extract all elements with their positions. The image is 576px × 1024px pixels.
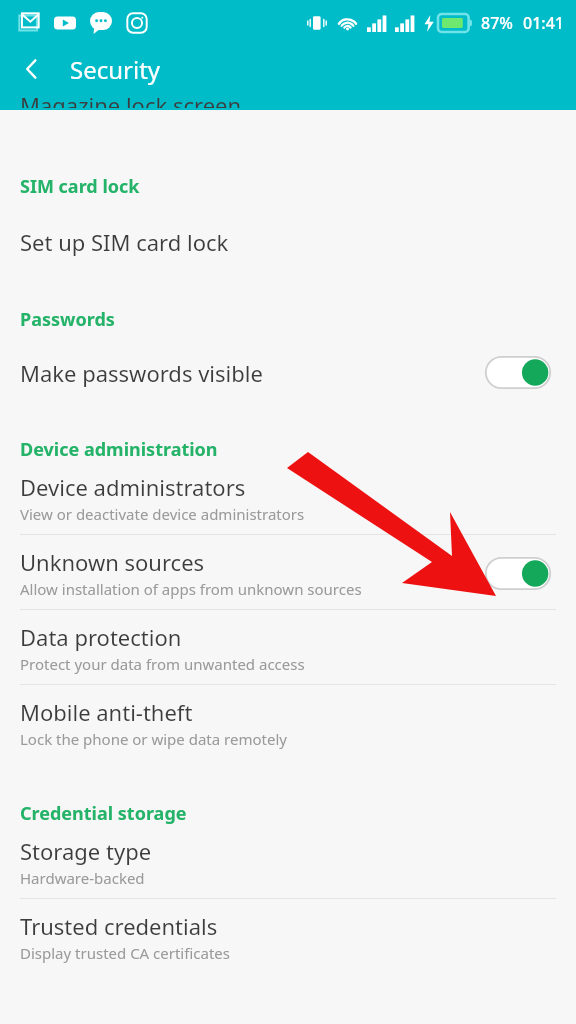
button[interactable]: Back (8, 45, 56, 93)
button[interactable]: Storage type (0, 836, 576, 898)
button[interactable]: Toggle on (485, 356, 551, 389)
button[interactable]: Toggle on (485, 557, 551, 590)
button[interactable]: Trusted credentials (0, 911, 576, 973)
button[interactable]: Mobile anti-theft (0, 697, 576, 759)
staticText: Passwords (20, 307, 115, 332)
staticText: Set up SIM card lock (20, 227, 229, 257)
staticText: Allow installation of apps from unknown … (20, 579, 362, 599)
staticText: Security (70, 53, 161, 86)
staticText: Lock the phone or wipe data remotely (20, 729, 287, 749)
staticText: Display trusted CA certificates (20, 943, 230, 963)
button[interactable]: Unknown sources (0, 535, 576, 609)
staticText: Magazine lock screen (20, 90, 242, 108)
staticText: Protect your data from unwanted access (20, 654, 305, 674)
button[interactable]: Make passwords visible (0, 352, 576, 393)
staticText: Unknown sources (20, 547, 205, 577)
button[interactable]: Set up SIM card lock (0, 225, 576, 259)
staticText: Trusted credentials (20, 911, 218, 941)
staticText: 01:41 (523, 12, 564, 34)
button[interactable]: Data protection (0, 622, 576, 684)
staticText: View or deactivate device administrators (20, 504, 305, 524)
staticText: Hardware-backed (20, 868, 145, 888)
staticText: Device administration (20, 437, 218, 462)
button[interactable]: Device administrators (0, 472, 576, 534)
staticText: Credential storage (20, 801, 187, 826)
staticText: Storage type (20, 836, 152, 866)
staticText: 87% (481, 12, 513, 34)
staticText: SIM card lock (20, 174, 140, 199)
staticText: Data protection (20, 622, 182, 652)
staticText: Mobile anti-theft (20, 697, 193, 727)
staticText: Device administrators (20, 472, 246, 502)
staticText: Make passwords visible (20, 358, 485, 388)
